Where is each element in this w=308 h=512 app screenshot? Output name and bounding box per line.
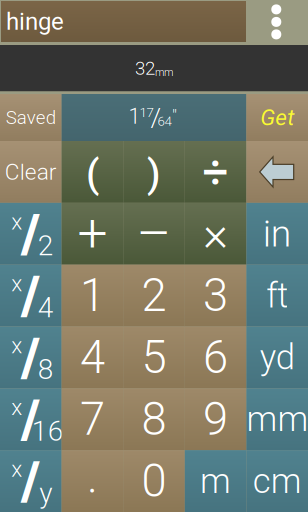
button[interactable]: 7 [62, 388, 123, 450]
button[interactable]: × [185, 203, 246, 265]
staticText: 4 [38, 291, 54, 324]
staticText: x [11, 270, 22, 297]
staticText: ″ [172, 105, 177, 125]
staticText: 2 [38, 229, 54, 262]
staticText: mm [155, 66, 173, 79]
staticText: 5 [141, 331, 166, 384]
staticText: 8 [141, 393, 166, 446]
staticText: 1 [80, 269, 105, 322]
staticText: ) [147, 151, 161, 197]
staticText: 32 [135, 57, 155, 79]
staticText: / [21, 202, 40, 265]
staticText: x [11, 394, 22, 421]
button[interactable]: + [62, 203, 123, 265]
staticText: mm [246, 399, 308, 439]
button[interactable]: ( [62, 141, 123, 203]
staticText: yd [260, 337, 295, 378]
button[interactable]: ) [123, 141, 185, 203]
button[interactable]: Saved [0, 94, 62, 141]
button[interactable]: More options [256, 0, 296, 44]
staticText: 4 [80, 331, 105, 384]
button[interactable]: . [62, 450, 123, 512]
button[interactable]: – [123, 203, 185, 265]
button[interactable]: yd [246, 326, 308, 388]
staticText: in [263, 212, 292, 256]
staticText: 8 [38, 353, 54, 386]
button[interactable]: cm [246, 450, 308, 512]
staticText: 7 [80, 393, 105, 446]
button[interactable]: 1 [62, 94, 246, 141]
button[interactable]: 5 [123, 326, 185, 388]
button[interactable]: 3 [185, 265, 246, 326]
staticText: Clear [5, 159, 57, 185]
staticText: 0 [141, 454, 166, 508]
staticText: / [21, 326, 40, 389]
staticText: / [150, 101, 161, 133]
button[interactable]: m [185, 450, 246, 512]
button[interactable]: Clear [0, 141, 62, 203]
staticText: hinge [6, 7, 64, 35]
staticText: x [11, 208, 22, 235]
button[interactable]: 8 [123, 388, 185, 450]
button[interactable]: 4 [62, 326, 123, 388]
staticText: 64 [157, 113, 171, 129]
staticText: 17 [139, 105, 153, 120]
staticText: Get [260, 104, 294, 131]
staticText: 1 [128, 104, 140, 129]
staticText: / [21, 264, 40, 327]
staticText: + [77, 202, 107, 265]
staticText: y [39, 477, 52, 509]
staticText: 6 [203, 331, 228, 384]
button[interactable]: ft [246, 265, 308, 326]
staticText: 3 [203, 269, 228, 322]
button[interactable]: hinge [1, 1, 246, 42]
staticText: / [21, 450, 40, 512]
staticText: cm [253, 461, 302, 501]
staticText: 16 [32, 415, 64, 448]
staticText: ( [86, 151, 99, 197]
button[interactable]: 1 [62, 265, 123, 326]
button[interactable]: Backspace [246, 141, 308, 203]
button[interactable]: x [0, 388, 62, 450]
button[interactable]: x [0, 265, 62, 326]
staticText: ÷ [203, 145, 229, 198]
button[interactable]: ÷ [185, 141, 246, 203]
button[interactable]: 0 [123, 450, 185, 512]
staticText: – [136, 202, 171, 265]
staticText: x [11, 332, 22, 359]
staticText: Saved [6, 107, 56, 128]
button[interactable]: x [0, 450, 62, 512]
button[interactable]: x [0, 326, 62, 388]
staticText: ft [266, 275, 288, 316]
button[interactable]: 2 [123, 265, 185, 326]
staticText: 9 [203, 393, 228, 446]
staticText: . [87, 450, 98, 504]
button[interactable]: Get [246, 94, 308, 141]
button[interactable]: mm [246, 388, 308, 450]
staticText: / [21, 388, 40, 450]
button[interactable]: 6 [185, 326, 246, 388]
staticText: × [203, 206, 228, 262]
staticText: 2 [141, 269, 166, 322]
staticText: m [200, 461, 231, 501]
button[interactable]: x [0, 203, 62, 265]
button[interactable]: 9 [185, 388, 246, 450]
button[interactable]: in [246, 203, 308, 265]
staticText: x [11, 456, 22, 482]
